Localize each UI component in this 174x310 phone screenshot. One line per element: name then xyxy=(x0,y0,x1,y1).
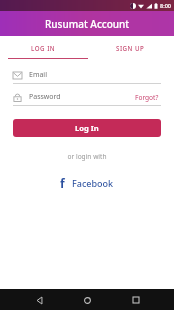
staticText: Rusumat Account xyxy=(45,17,130,31)
staticText: Email xyxy=(29,70,47,80)
button[interactable]: Forgot? xyxy=(133,91,161,104)
button[interactable]: SIGN UP xyxy=(87,36,174,59)
button[interactable]: Back xyxy=(29,290,49,310)
button[interactable]: Home xyxy=(77,290,97,310)
staticText: f xyxy=(60,175,65,191)
staticText: 8:00 xyxy=(160,2,171,9)
staticText: Log In xyxy=(75,123,99,133)
staticText: Forgot? xyxy=(135,93,159,102)
staticText: LOG IN xyxy=(31,44,56,52)
button[interactable]: Password xyxy=(13,89,133,105)
button[interactable]: LOG IN xyxy=(0,36,87,59)
button[interactable]: Recents xyxy=(126,290,146,310)
button[interactable]: Log In xyxy=(13,119,161,137)
staticText: or login with xyxy=(0,152,174,161)
staticText: Password xyxy=(29,92,61,102)
button[interactable]: Email xyxy=(13,67,161,83)
staticText: SIGN UP xyxy=(116,44,145,52)
button[interactable]: f xyxy=(56,173,118,193)
staticText: Facebook xyxy=(72,177,114,189)
